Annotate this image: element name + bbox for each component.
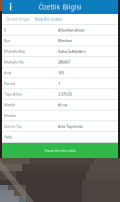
staticText: Özetlik Bilgisi <box>38 3 81 11</box>
staticText: Mevkii <box>4 113 16 118</box>
staticText: Ada <box>4 70 11 75</box>
staticText: Mahalle No <box>4 59 24 65</box>
staticText: 3.373,55 <box>58 91 72 97</box>
button[interactable]: Bina Bil. Listesi <box>33 14 64 24</box>
staticText: Mahalle/Köy <box>4 49 25 54</box>
staticText: Özetlik Bilgisi <box>6 16 30 22</box>
staticText: Parsel <box>4 81 15 86</box>
staticText: Zemin Tip <box>4 123 21 129</box>
staticText: İl <box>4 27 6 32</box>
staticText: İlçe <box>4 38 10 43</box>
staticText: 1 <box>58 81 60 86</box>
button[interactable]: Özetlik Bilgisi <box>3 14 33 24</box>
staticText: Afyonkarahisar <box>58 27 85 32</box>
staticText: Tapu Alanı <box>4 91 22 97</box>
staticText: 103 <box>58 70 64 75</box>
staticText: Merkez <box>58 38 72 43</box>
staticText: Pafta <box>4 134 12 139</box>
staticText: Arsa <box>58 102 67 107</box>
staticText: Ana Taşınmaz <box>58 123 83 129</box>
button[interactable]: Bilgi <box>5 0 17 14</box>
staticText: Favorilerime ekle <box>44 148 75 153</box>
button[interactable]: Favorilerime ekle <box>2 143 118 158</box>
staticText: Bina Bil. Listesi <box>35 16 62 22</box>
staticText: 286067 <box>58 59 70 65</box>
staticText: Nitelik <box>4 102 15 107</box>
staticText: Sulus-Sultandere <box>58 49 86 54</box>
